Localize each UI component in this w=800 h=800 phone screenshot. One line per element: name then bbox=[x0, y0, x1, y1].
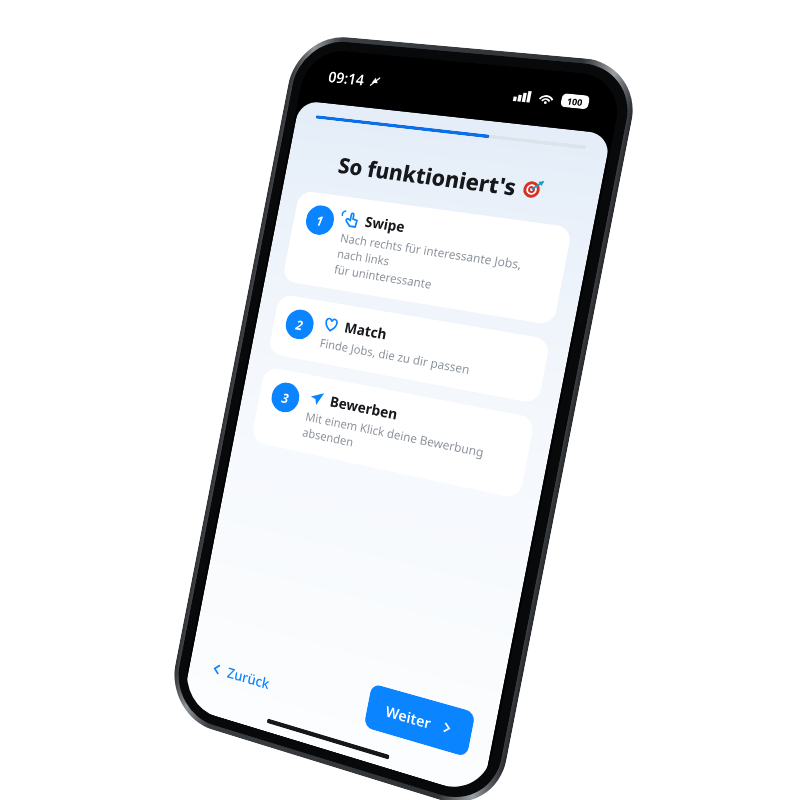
other: Ziel bbox=[521, 178, 543, 199]
other: Swipe bbox=[343, 211, 361, 228]
staticText: Finde Jobs, die zu dir passen bbox=[318, 335, 471, 378]
other: Bewerben bbox=[308, 389, 326, 408]
staticText: Weiter bbox=[384, 701, 433, 733]
staticText: 100 bbox=[566, 95, 584, 108]
button[interactable]: 3 bbox=[251, 366, 535, 499]
staticText: 3 bbox=[280, 388, 290, 407]
staticText: 1 bbox=[315, 211, 325, 230]
staticText: 2 bbox=[294, 315, 305, 334]
staticText: Nach rechts für interessante Jobs, nach … bbox=[333, 230, 552, 311]
staticText: 09:14 bbox=[327, 66, 367, 90]
staticText: Match bbox=[343, 317, 389, 343]
staticText: Bewerben bbox=[328, 391, 400, 423]
staticText: So funktioniert's bbox=[336, 150, 519, 201]
button[interactable]: Weiter bbox=[363, 683, 476, 757]
button[interactable]: 1 bbox=[282, 190, 573, 326]
button[interactable]: 2 bbox=[268, 293, 551, 404]
staticText: Zurück bbox=[226, 663, 271, 693]
staticText: Swipe bbox=[364, 212, 407, 236]
button[interactable]: Zurück bbox=[206, 652, 276, 700]
other: Match bbox=[322, 315, 340, 334]
staticText: Mit einem Klick deine Bewerbung absenden bbox=[301, 408, 515, 484]
